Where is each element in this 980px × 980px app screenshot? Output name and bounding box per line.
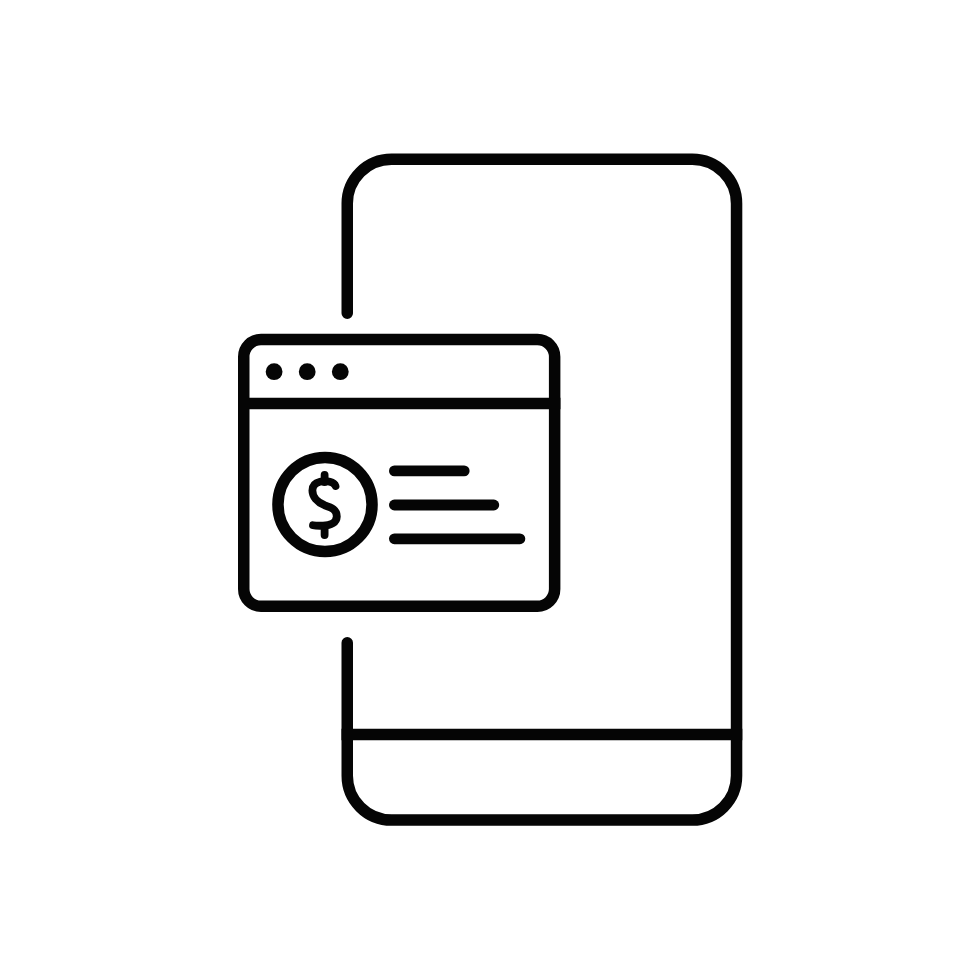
button[interactable]: Mobile online payment illustration xyxy=(0,0,980,980)
